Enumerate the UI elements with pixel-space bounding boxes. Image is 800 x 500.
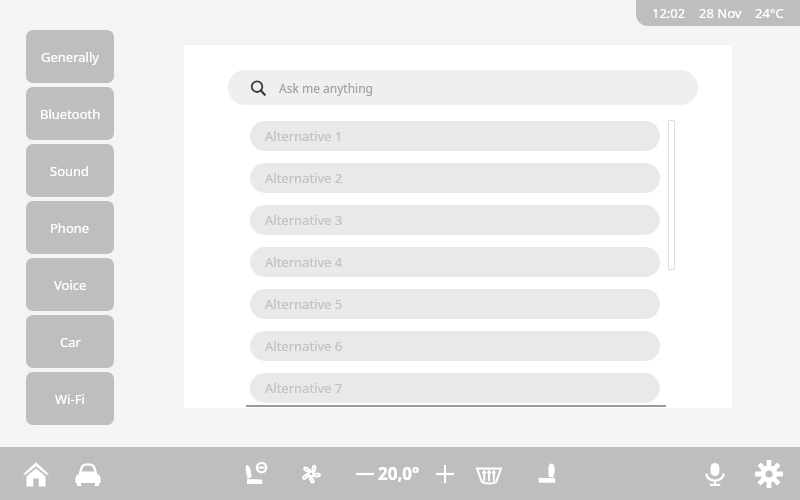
staticText: Alternative 3 bbox=[265, 211, 343, 229]
button[interactable]: 20,0° bbox=[378, 462, 420, 485]
button[interactable]: Alternative 5 bbox=[250, 289, 660, 319]
button[interactable]: Phone bbox=[26, 201, 114, 254]
staticText: Voice bbox=[54, 276, 87, 294]
button[interactable]: Alternative 4 bbox=[250, 247, 660, 277]
button[interactable]: Bluetooth bbox=[26, 87, 114, 140]
staticText: Alternative 6 bbox=[265, 337, 343, 355]
staticText: Alternative 5 bbox=[265, 295, 343, 313]
staticText: Alternative 2 bbox=[265, 169, 343, 187]
button[interactable]: Generally bbox=[26, 30, 114, 83]
button[interactable]: Decrease temperature bbox=[348, 457, 382, 491]
staticText: Phone bbox=[50, 219, 90, 237]
staticText: Ask me anything bbox=[279, 80, 373, 96]
staticText: 24°C bbox=[755, 4, 784, 22]
staticText: Bluetooth bbox=[40, 105, 101, 123]
button[interactable]: Heated seat bbox=[525, 451, 571, 497]
button[interactable]: Car bbox=[26, 315, 114, 368]
button[interactable]: Heated steering seat bbox=[233, 451, 279, 497]
button[interactable]: Alternative 7 bbox=[250, 373, 660, 403]
staticText: Alternative 7 bbox=[265, 379, 343, 397]
button[interactable]: Increase temperature bbox=[428, 457, 462, 491]
button[interactable]: Alternative 2 bbox=[250, 163, 660, 193]
button[interactable]: Rear defroster bbox=[466, 451, 512, 497]
button[interactable]: Voice bbox=[26, 258, 114, 311]
button[interactable]: Ask me anything bbox=[228, 70, 698, 105]
staticText: 28 Nov bbox=[699, 4, 742, 22]
button[interactable]: Car bbox=[62, 448, 114, 500]
button[interactable]: 12:02 bbox=[636, 0, 800, 26]
button[interactable]: Home bbox=[10, 448, 62, 500]
staticText: Car bbox=[60, 333, 81, 351]
button[interactable]: Fan bbox=[288, 451, 334, 497]
button[interactable]: Wi-Fi bbox=[26, 372, 114, 425]
button[interactable]: Sound bbox=[26, 144, 114, 197]
button[interactable]: Alternative 3 bbox=[250, 205, 660, 235]
staticText: Alternative 4 bbox=[265, 253, 343, 271]
button[interactable]: Settings bbox=[746, 451, 792, 497]
staticText: Generally bbox=[41, 48, 99, 66]
staticText: Sound bbox=[50, 162, 90, 180]
staticText: 12:02 bbox=[652, 4, 686, 22]
button[interactable]: Voice assistant bbox=[692, 451, 738, 497]
staticText: Wi-Fi bbox=[55, 390, 85, 408]
staticText: Alternative 1 bbox=[265, 127, 343, 145]
staticText: 20,0° bbox=[378, 462, 420, 485]
button[interactable]: Alternative 1 bbox=[250, 121, 660, 151]
button[interactable]: Alternative 6 bbox=[250, 331, 660, 361]
